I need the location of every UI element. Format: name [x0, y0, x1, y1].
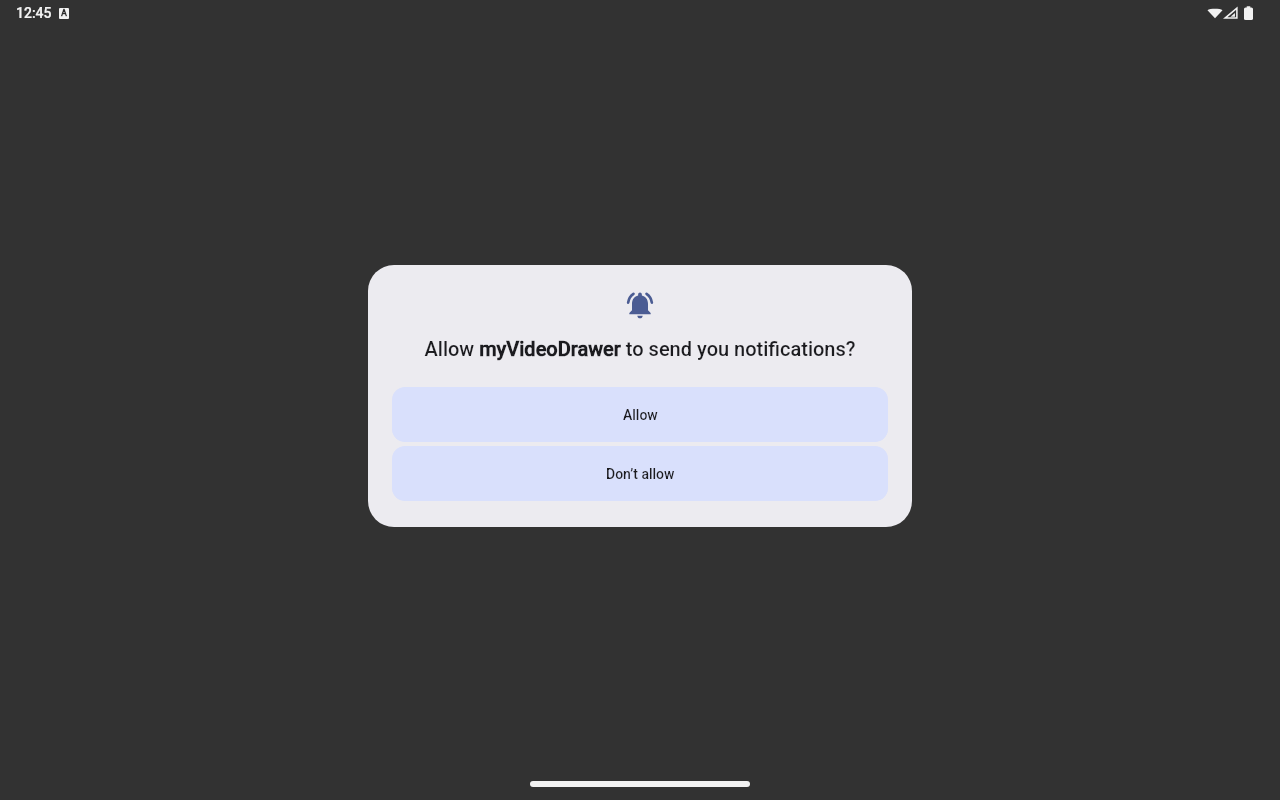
staticText: 12:45	[16, 5, 52, 21]
button[interactable]: Allow	[392, 387, 888, 442]
other: Home	[530, 781, 750, 787]
staticText: A	[61, 8, 67, 19]
staticText: Don’t allow	[606, 466, 675, 482]
other: App notification	[59, 8, 69, 19]
staticText: Allow myVideoDrawer to send you notifica…	[368, 337, 912, 360]
other: Wi-Fi	[1207, 6, 1223, 20]
other: Mobile signal	[1224, 6, 1238, 20]
other: Battery full	[1244, 6, 1253, 20]
button[interactable]: Don’t allow	[392, 446, 888, 501]
staticText: Allow	[623, 407, 658, 423]
other: Notifications	[624, 289, 656, 321]
